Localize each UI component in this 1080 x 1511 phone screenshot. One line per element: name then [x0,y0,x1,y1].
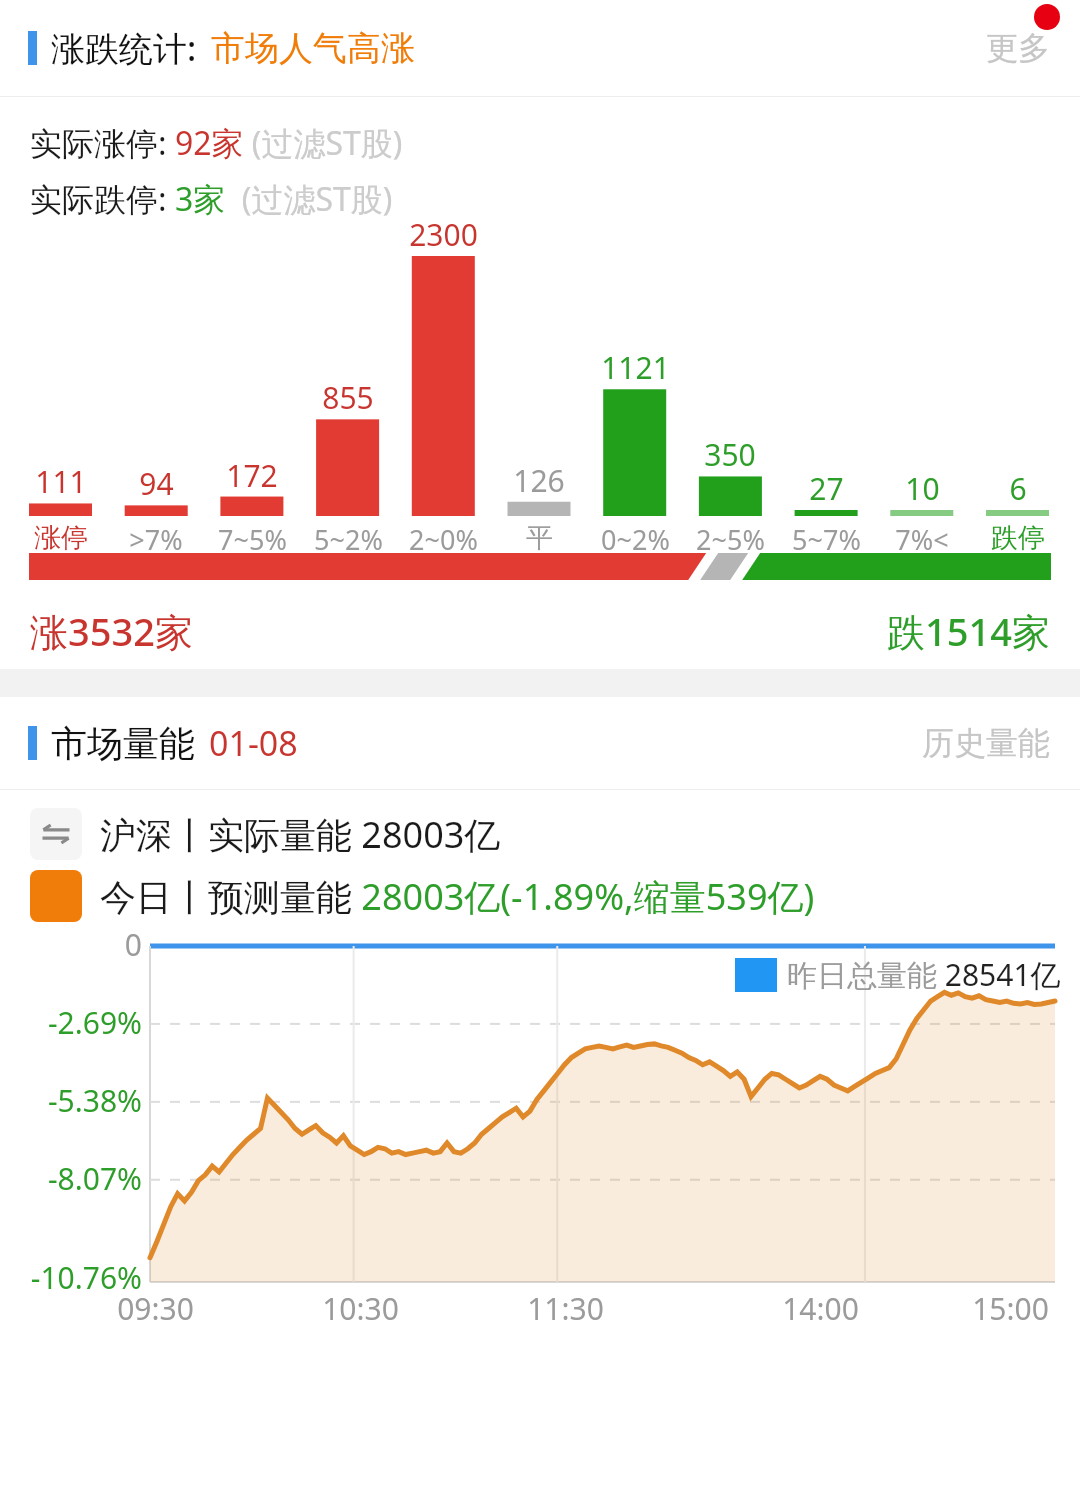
staticText: 10:30 [322,1288,399,1329]
staticText: 2~0% [409,521,478,558]
staticText: 94 [139,463,174,504]
staticText: 01-08 [209,720,298,766]
staticText: 市场人气高涨 [211,27,415,70]
staticText: >7% [129,521,183,558]
staticText: 5~2% [314,521,383,558]
staticText: -8.07% [47,1158,142,1199]
staticText: 126 [513,460,565,501]
staticText: 15:00 [972,1288,1049,1329]
staticText: 10 [905,468,940,509]
staticText: 0 [124,924,142,965]
staticText: 350 [704,434,756,475]
staticText: 2~5% [696,521,765,558]
staticText: 实际涨停: 92家 (过滤ST股) [30,121,403,165]
staticText: 今日丨预测量能 28003亿(-1.89%,缩量539亿) [100,872,815,921]
staticText: 涨跌统计: [51,25,197,71]
staticText: -2.69% [47,1002,142,1043]
button[interactable]: Switch market [30,808,82,860]
staticText: 跌1514家 [887,605,1050,657]
staticText: 实际跌停: 3家 (过滤ST股) [30,177,393,221]
staticText: 11:30 [527,1288,604,1329]
button[interactable]: 更多 [986,0,1080,96]
staticText: -10.76% [30,1257,142,1298]
staticText: 0~2% [601,521,670,558]
staticText: 市场量能 [51,721,195,766]
staticText: 172 [226,455,278,496]
staticText: 更多 [986,28,1050,68]
staticText: 平 [526,521,553,555]
button[interactable]: 历史量能 [922,697,1080,789]
staticText: 7~5% [218,521,287,558]
staticText: 跌停 [991,521,1045,555]
staticText: 历史量能 [922,723,1050,763]
staticText: 涨停 [34,521,88,555]
staticText: 2300 [409,214,478,255]
staticText: 6 [1009,468,1027,509]
staticText: 涨3532家 [30,605,193,657]
staticText: 14:00 [782,1288,859,1329]
staticText: 沪深丨实际量能 28003亿 [100,810,501,859]
staticText: 5~7% [792,521,861,558]
staticText: -5.38% [47,1080,142,1121]
staticText: 111 [35,461,87,502]
staticText: 7%< [895,521,949,558]
staticText: 昨日总量能 28541亿 [787,954,1061,995]
staticText: 1121 [601,347,670,388]
staticText: 09:30 [117,1288,194,1329]
staticText: 855 [322,377,374,418]
staticText: 27 [809,468,844,509]
